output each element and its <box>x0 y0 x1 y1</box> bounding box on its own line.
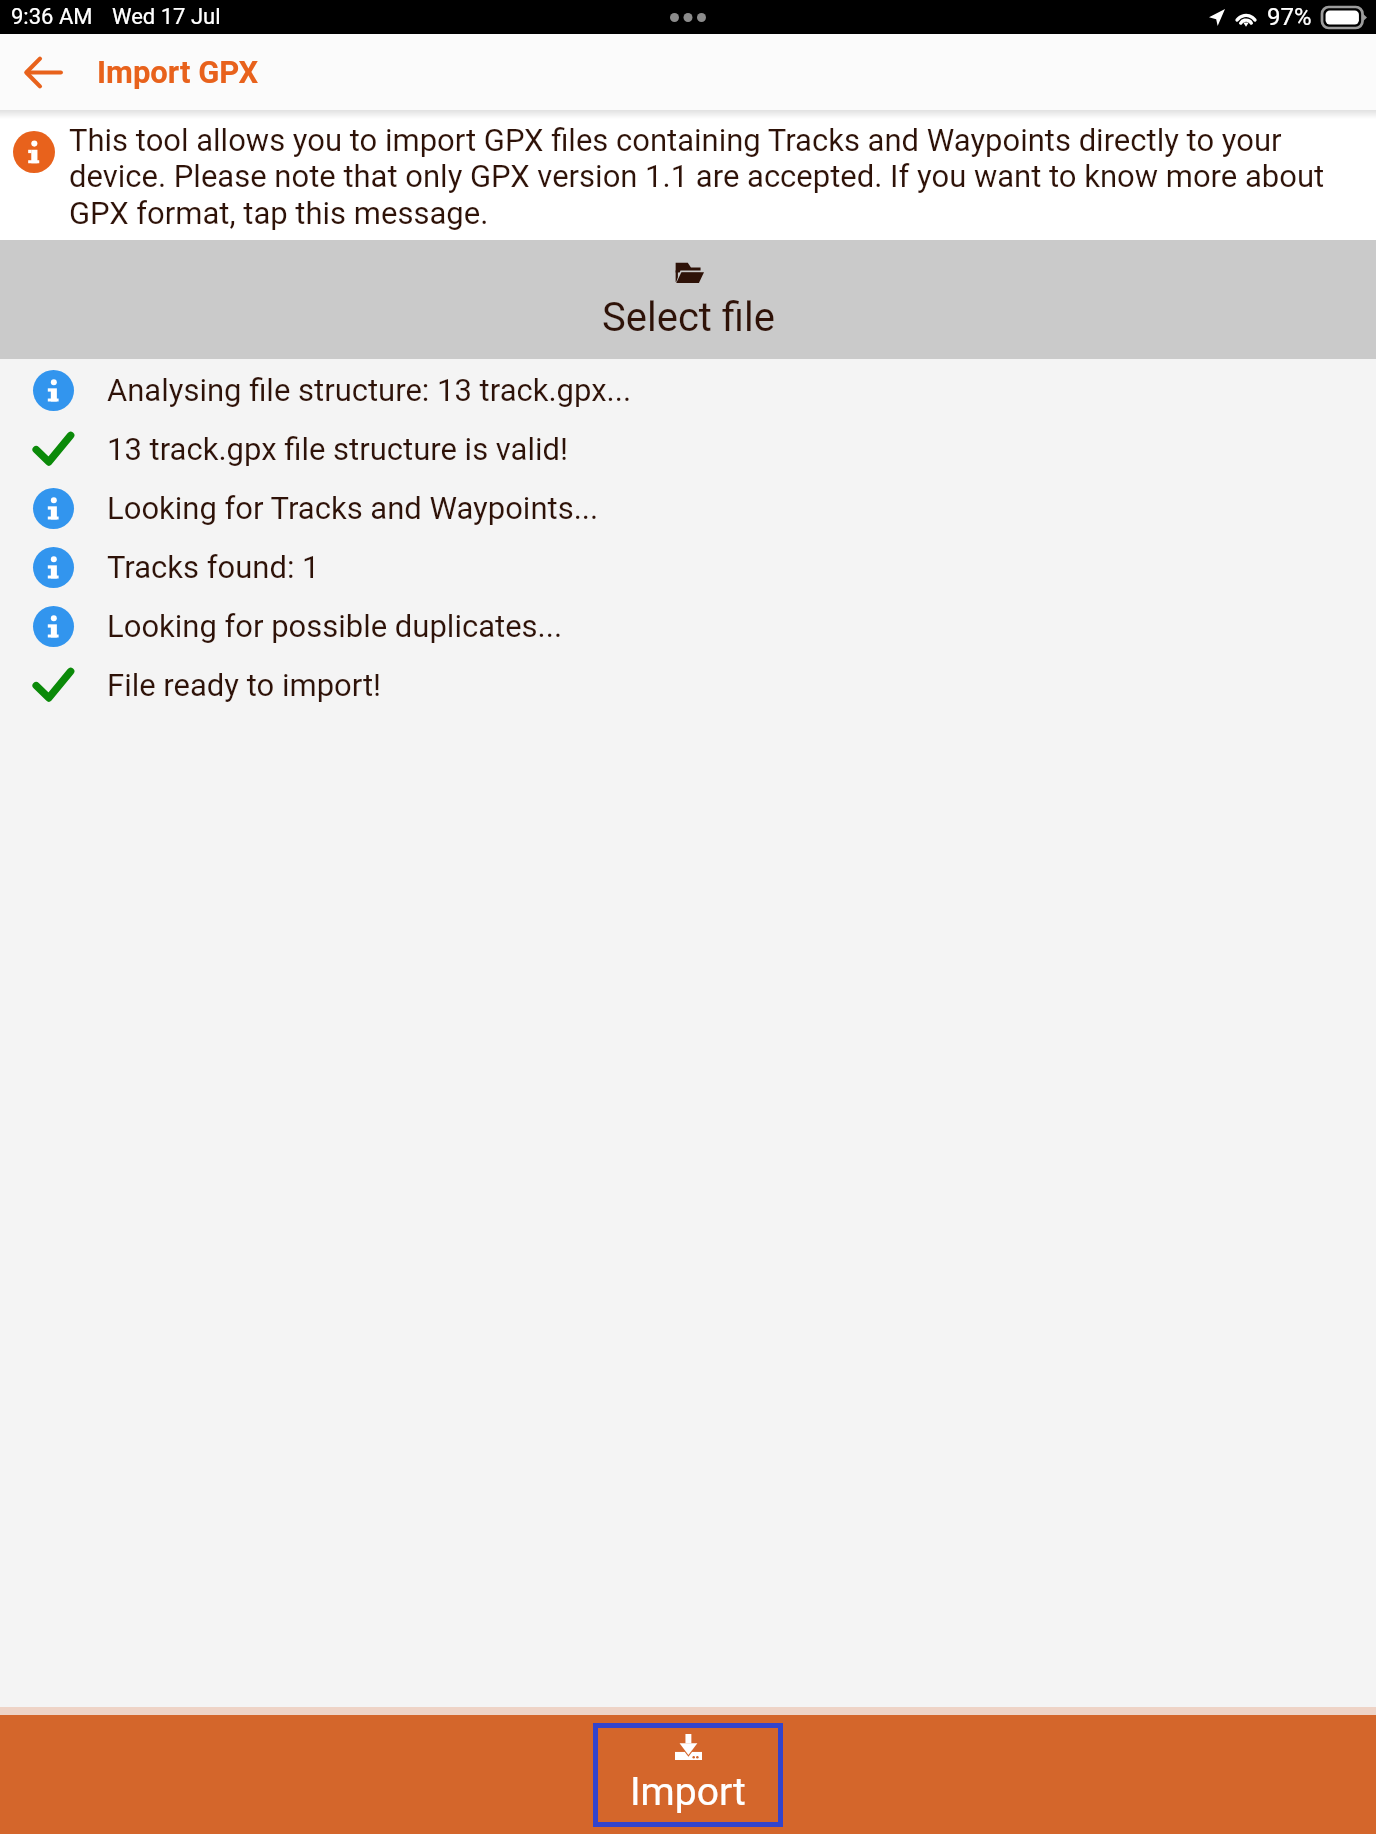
staticText: Import GPX <box>97 54 259 90</box>
button[interactable]: This tool allows you to import GPX files… <box>0 110 1376 240</box>
staticText: Import <box>630 1769 746 1815</box>
staticText: Analysing file structure: 13 track.gpx..… <box>107 372 632 408</box>
staticText: 9:36 AM <box>11 4 93 30</box>
button[interactable]: Analysing file structure: 13 track.gpx..… <box>0 360 1376 419</box>
button[interactable]: File ready to import! <box>0 655 1376 714</box>
button[interactable]: Looking for possible duplicates... <box>0 596 1376 655</box>
staticText: This tool allows you to import GPX files… <box>69 122 1328 232</box>
button[interactable]: Looking for Tracks and Waypoints... <box>0 478 1376 537</box>
button[interactable]: Import <box>598 1728 778 1822</box>
button[interactable]: Select file <box>0 240 1376 359</box>
staticText: File ready to import! <box>107 667 382 703</box>
staticText: 97% <box>1267 3 1312 31</box>
staticText: Tracks found: 1 <box>107 549 320 585</box>
button[interactable]: Tracks found: 1 <box>0 537 1376 596</box>
staticText: Looking for possible duplicates... <box>107 608 563 644</box>
staticText: Looking for Tracks and Waypoints... <box>107 490 599 526</box>
button[interactable]: 13 track.gpx file structure is valid! <box>0 419 1376 478</box>
staticText: Wed 17 Jul <box>112 4 221 30</box>
staticText: 13 track.gpx file structure is valid! <box>107 431 569 467</box>
staticText: Select file <box>602 294 775 341</box>
button[interactable]: Back <box>0 34 85 110</box>
